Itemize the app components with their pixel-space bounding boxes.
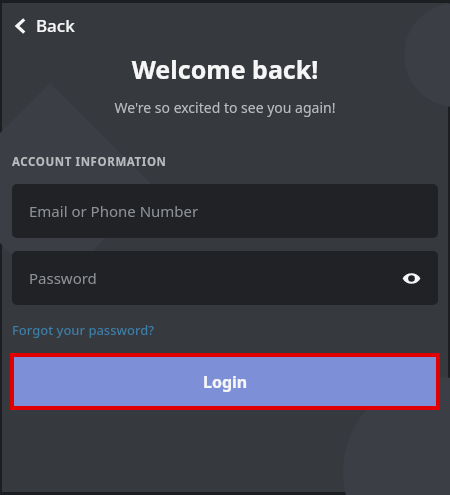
staticText: We're so excited to see you again!: [2, 98, 448, 117]
staticText: Welcome back!: [2, 52, 448, 86]
staticText: ACCOUNT INFORMATION: [12, 154, 167, 170]
button[interactable]: Email or Phone Number: [12, 184, 438, 238]
button[interactable]: Back: [8, 11, 79, 40]
other: Back: [12, 17, 30, 35]
staticText: Email or Phone Number: [29, 201, 199, 221]
staticText: Login: [203, 371, 248, 393]
staticText: Back: [36, 14, 75, 37]
button[interactable]: Forgot your password?: [10, 319, 157, 341]
button[interactable]: Login: [14, 357, 436, 406]
staticText: Password: [29, 268, 97, 288]
button[interactable]: Password: [12, 251, 438, 305]
staticText: Forgot your password?: [12, 321, 155, 339]
button[interactable]: Show password: [396, 263, 426, 293]
